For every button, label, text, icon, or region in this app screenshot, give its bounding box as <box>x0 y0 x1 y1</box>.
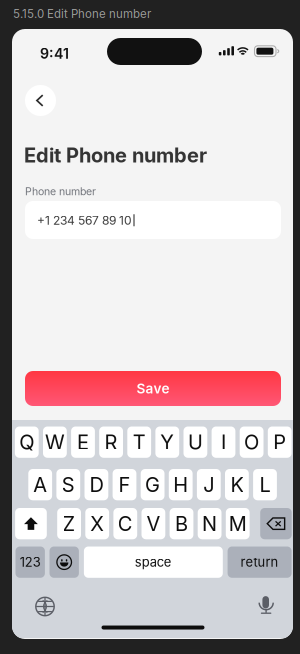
staticText: O <box>244 430 259 454</box>
button[interactable]: M <box>226 508 250 539</box>
staticText: G <box>145 473 160 497</box>
staticText: Phone number <box>25 185 96 198</box>
staticText: Edit Phone number <box>24 143 207 167</box>
staticText: D <box>89 473 103 497</box>
staticText: S <box>62 473 75 497</box>
staticText: B <box>175 512 188 536</box>
button[interactable]: X <box>85 508 109 539</box>
button[interactable]: T <box>127 426 151 458</box>
staticText: E <box>77 430 89 454</box>
button[interactable]: O <box>240 426 263 458</box>
staticText: 123 <box>20 554 41 570</box>
staticText: N <box>202 512 217 536</box>
staticText: V <box>146 512 160 536</box>
button[interactable]: 123 <box>15 546 45 578</box>
staticText: U <box>188 430 203 454</box>
button[interactable]: W <box>43 426 67 458</box>
staticText: J <box>203 473 214 497</box>
button[interactable]: Q <box>15 426 39 458</box>
staticText: space <box>135 554 172 570</box>
staticText: X <box>90 512 104 536</box>
button[interactable]: N <box>198 508 221 539</box>
staticText: R <box>105 430 118 454</box>
button[interactable]: B <box>170 508 193 539</box>
button[interactable]: Back <box>25 85 56 116</box>
button[interactable]: K <box>225 469 249 500</box>
staticText: I <box>221 430 226 454</box>
button[interactable]: Delete <box>260 508 292 539</box>
staticText: Z <box>63 512 76 536</box>
button[interactable]: E <box>71 426 95 458</box>
button[interactable]: R <box>99 426 123 458</box>
button[interactable]: Y <box>155 426 179 458</box>
button[interactable]: G <box>141 469 164 500</box>
button[interactable]: L <box>253 469 277 500</box>
button[interactable]: F <box>113 469 136 500</box>
staticText: P <box>273 430 286 454</box>
button[interactable]: H <box>169 469 193 500</box>
button[interactable]: Dictate <box>257 596 274 614</box>
button[interactable]: Shift <box>15 508 47 539</box>
staticText: Y <box>160 430 174 454</box>
staticText: 5.15.0 Edit Phone number <box>13 7 151 21</box>
staticText: 9:41 <box>40 45 69 62</box>
staticText: return <box>241 554 279 570</box>
button[interactable]: P <box>268 426 292 458</box>
button[interactable]: A <box>28 469 52 500</box>
button[interactable]: Emoji <box>49 546 79 578</box>
button[interactable]: Z <box>57 508 81 539</box>
button[interactable]: D <box>84 469 108 500</box>
button[interactable]: return <box>228 546 292 578</box>
staticText: C <box>118 512 133 536</box>
button[interactable]: space <box>84 546 223 578</box>
button[interactable]: Save <box>25 371 281 406</box>
staticText: T <box>133 430 146 454</box>
staticText: Q <box>19 430 34 454</box>
staticText: M <box>229 512 247 536</box>
button[interactable]: Next keyboard <box>35 597 54 616</box>
button[interactable]: V <box>141 508 165 539</box>
button[interactable]: S <box>56 469 80 500</box>
staticText: +1 234 567 89 10 <box>37 213 132 227</box>
staticText: L <box>259 473 270 497</box>
button[interactable]: J <box>197 469 221 500</box>
staticText: H <box>173 473 188 497</box>
staticText: K <box>230 473 243 497</box>
staticText: A <box>33 473 47 497</box>
staticText: F <box>118 473 130 497</box>
button[interactable]: I <box>212 426 235 458</box>
staticText: Save <box>136 380 169 397</box>
button[interactable]: C <box>113 508 137 539</box>
button[interactable]: U <box>183 426 207 458</box>
button[interactable]: +1 234 567 89 10 <box>25 201 281 239</box>
staticText: W <box>45 430 65 454</box>
